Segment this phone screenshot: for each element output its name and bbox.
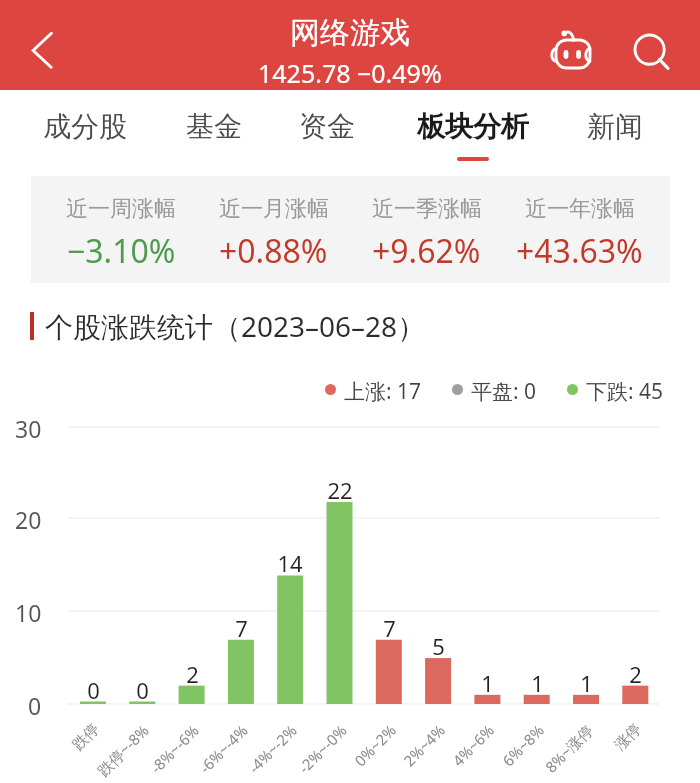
staticText: 5: [432, 631, 445, 655]
staticText: -4%~-2%: [244, 720, 301, 777]
staticText: 0: [136, 675, 149, 699]
staticText: 20: [15, 504, 42, 532]
staticText: 近一季涨幅: [372, 195, 482, 223]
button[interactable]: 板块分析: [403, 90, 543, 170]
staticText: 1: [580, 668, 593, 692]
staticText: +0.88%: [219, 229, 328, 273]
staticText: 基金: [186, 109, 242, 144]
staticText: 近一年涨幅: [525, 195, 635, 223]
staticText: 跌停: [69, 720, 103, 755]
staticText: 7: [383, 613, 396, 637]
button[interactable]: AI assistant: [546, 19, 602, 75]
staticText: 板块分析: [417, 109, 529, 144]
button[interactable]: 近一周涨幅: [45, 176, 197, 273]
staticText: -8%~-6%: [146, 720, 203, 777]
staticText: 7: [235, 613, 248, 637]
staticText: 下跌: 45: [586, 377, 664, 406]
button[interactable]: 基金: [144, 90, 284, 170]
staticText: 2%~4%: [399, 720, 449, 770]
staticText: 6%~8%: [498, 720, 548, 770]
staticText: +43.63%: [516, 229, 643, 273]
staticText: 0%~2%: [350, 720, 400, 770]
staticText: -6%~-4%: [195, 720, 252, 777]
staticText: 跌停~-8%: [93, 720, 153, 780]
staticText: 涨停: [611, 720, 645, 755]
button[interactable]: 近一年涨幅: [503, 176, 656, 273]
staticText: 新闻: [587, 109, 643, 144]
staticText: 8%~涨停: [541, 720, 597, 777]
staticText: 资金: [299, 109, 355, 144]
staticText: 10: [15, 597, 42, 625]
staticText: 平盘: 0: [471, 377, 537, 406]
staticText: 网络游戏: [290, 14, 410, 52]
staticText: 2: [629, 659, 642, 683]
button[interactable]: 资金: [257, 90, 397, 170]
staticText: 1: [481, 668, 494, 692]
button[interactable]: 新闻: [545, 90, 685, 170]
staticText: 成分股: [43, 109, 127, 144]
button[interactable]: 平盘: 0: [452, 377, 537, 406]
button[interactable]: Search: [622, 21, 678, 77]
staticText: 1425.78 −0.49%: [258, 56, 442, 90]
staticText: 22: [327, 475, 353, 499]
staticText: −3.10%: [67, 229, 176, 273]
staticText: 个股涨跌统计（2023–06–28）: [45, 307, 426, 345]
staticText: 2: [186, 659, 199, 683]
button[interactable]: Back: [16, 21, 72, 77]
staticText: 0: [28, 690, 42, 718]
staticText: 4%~6%: [448, 720, 498, 770]
button[interactable]: 近一月涨幅: [197, 176, 350, 273]
staticText: 近一周涨幅: [66, 195, 176, 223]
staticText: -2%~-0%: [294, 720, 351, 777]
button[interactable]: 上涨: 17: [325, 377, 422, 406]
staticText: 1: [531, 668, 544, 692]
button[interactable]: 成分股: [15, 90, 155, 170]
button[interactable]: 近一季涨幅: [350, 176, 503, 273]
staticText: 0: [87, 675, 100, 699]
button[interactable]: 下跌: 45: [567, 377, 664, 406]
staticText: 14: [277, 548, 303, 572]
staticText: 上涨: 17: [344, 377, 422, 406]
staticText: 近一月涨幅: [219, 195, 329, 223]
staticText: +9.62%: [372, 229, 481, 273]
staticText: 30: [15, 413, 42, 441]
